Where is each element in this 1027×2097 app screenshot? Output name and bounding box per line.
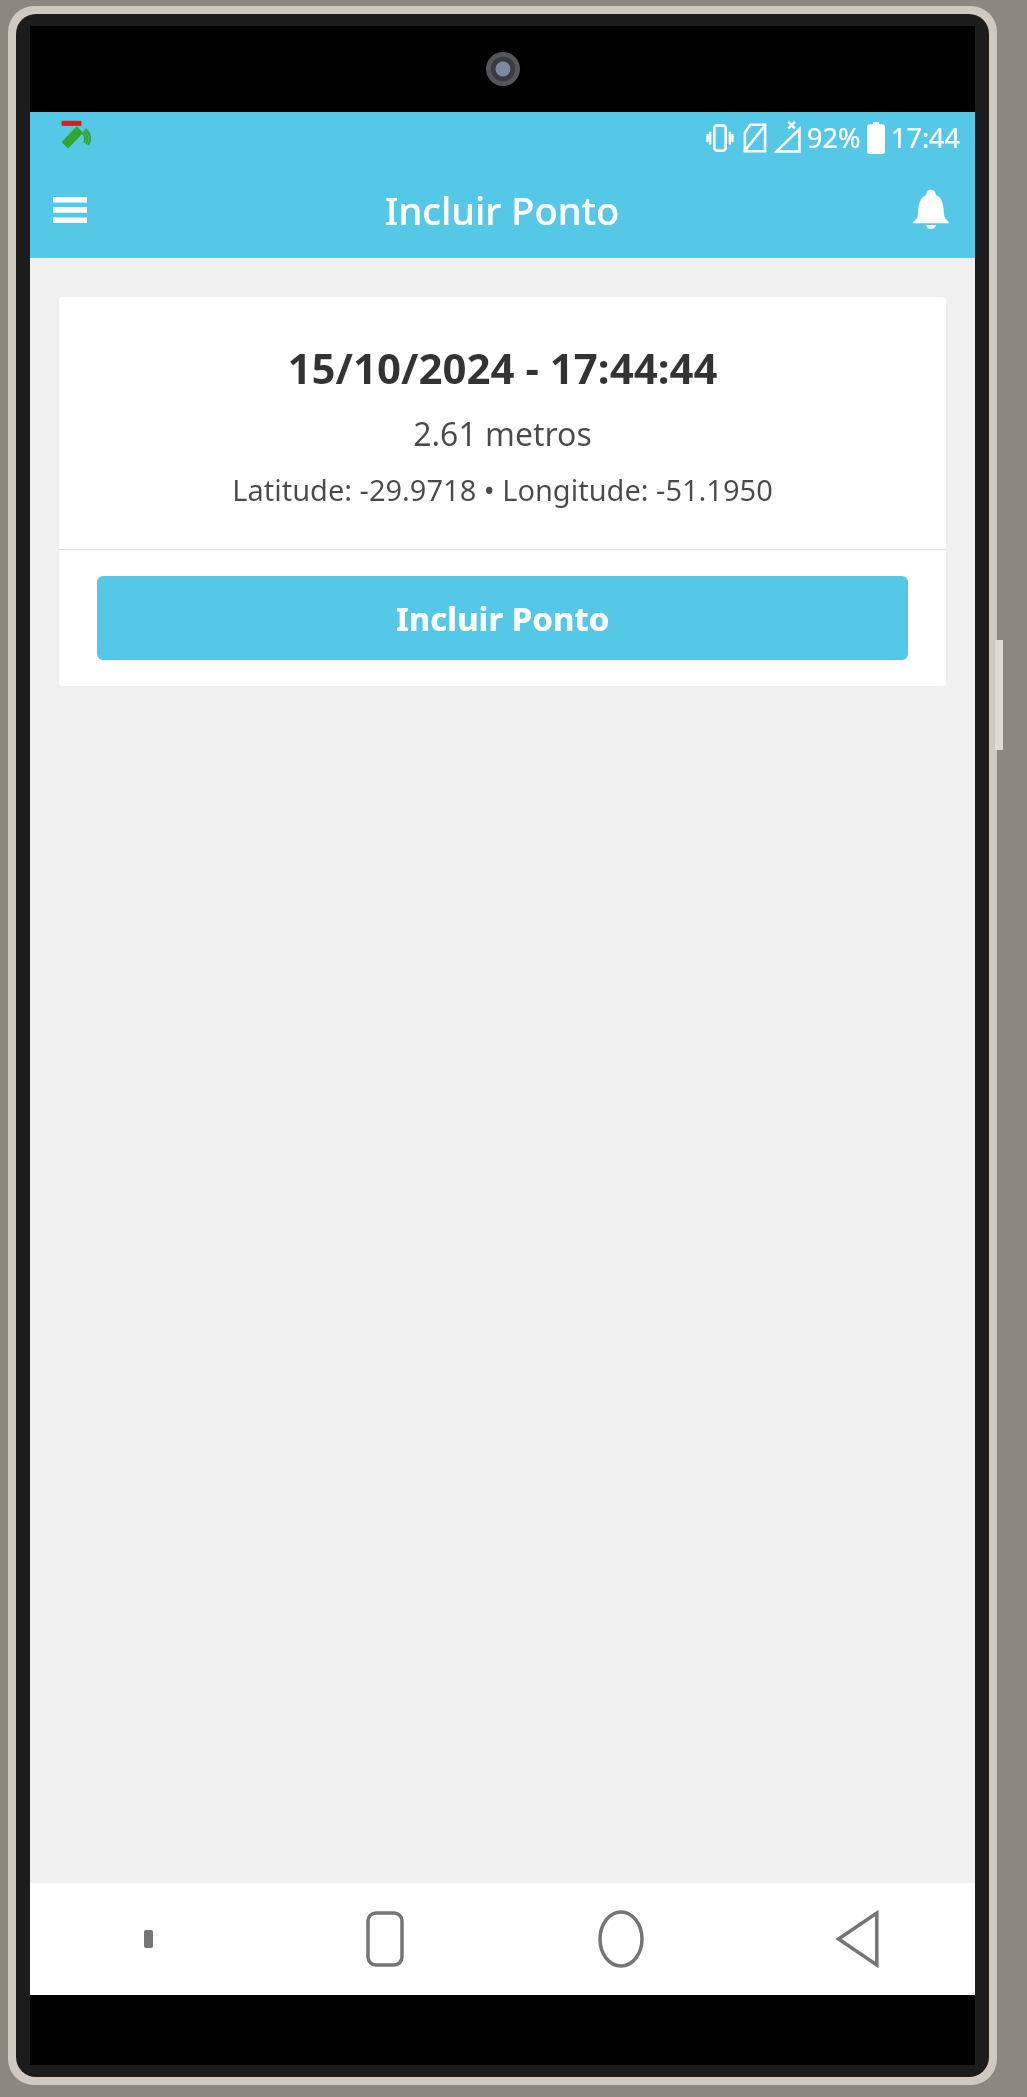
staticText: Incluir Ponto — [385, 184, 620, 236]
staticText: Latitude: -29.9718 • Longitude: -51.1950 — [232, 470, 773, 509]
staticText: 2.61 metros — [413, 412, 592, 456]
button[interactable]: Notifications — [903, 182, 959, 238]
button[interactable]: Incluir Ponto — [97, 576, 908, 660]
staticText: Incluir Ponto — [396, 596, 610, 641]
staticText: 15/10/2024 - 17:44:44 — [287, 339, 718, 396]
button[interactable]: Menu — [42, 182, 98, 238]
staticText: 92% — [807, 119, 861, 156]
staticText: 17:44 — [891, 119, 961, 156]
button[interactable]: More — [30, 1883, 267, 1995]
button[interactable]: Back — [739, 1883, 975, 1995]
button[interactable]: Home — [503, 1883, 739, 1995]
button[interactable]: Recent apps — [267, 1883, 503, 1995]
